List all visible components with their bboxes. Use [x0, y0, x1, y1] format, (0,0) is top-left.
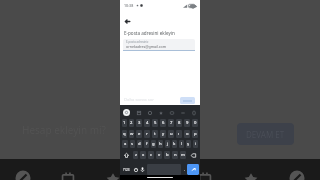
button[interactable]: Period: [182, 164, 187, 175]
staticText: a: [124, 141, 127, 147]
staticText: 0: [194, 120, 197, 126]
button[interactable]: s: [130, 140, 135, 148]
button[interactable]: Nav 4: [136, 168, 182, 180]
staticText: 8: [178, 120, 181, 126]
button[interactable]: Back: [122, 16, 133, 27]
button[interactable]: x: [140, 151, 146, 159]
button[interactable]: Keyboard tool 4: [168, 109, 175, 116]
button[interactable]: y: [160, 130, 166, 138]
staticText: y: [162, 131, 165, 137]
button[interactable]: 9: [184, 119, 190, 127]
staticText: .: [184, 167, 186, 173]
button[interactable]: Google: [123, 109, 130, 116]
staticText: m: [181, 152, 185, 158]
button[interactable]: z: [133, 151, 138, 159]
button[interactable]: b: [164, 151, 170, 159]
staticText: p: [194, 131, 197, 137]
staticText: i: [195, 141, 197, 147]
button[interactable]: Voice input: [139, 164, 146, 175]
button[interactable]: u: [168, 130, 174, 138]
staticText: x: [142, 152, 145, 158]
button[interactable]: E-posta adresiniz: [123, 39, 195, 51]
button[interactable]: 6: [160, 119, 166, 127]
staticText: 9: [186, 120, 189, 126]
button[interactable]: e: [136, 130, 142, 138]
button[interactable]: 2: [129, 119, 134, 127]
button[interactable]: Keyboard tool 2: [146, 109, 153, 116]
staticText: 4: [146, 120, 149, 126]
button[interactable]: o: [184, 130, 190, 138]
button[interactable]: 1: [122, 119, 127, 127]
staticText: ı: [178, 131, 180, 137]
button[interactable]: Keyboard tool 6: [190, 109, 197, 116]
button[interactable]: ş: [186, 140, 191, 148]
staticText: z: [135, 152, 137, 158]
button[interactable]: f: [144, 140, 149, 148]
button[interactable]: Shift: [122, 151, 131, 159]
button[interactable]: 7: [168, 119, 174, 127]
button[interactable]: ?123: [121, 164, 132, 175]
button[interactable]: [180, 97, 195, 104]
staticText: DEVAM ET: [246, 129, 285, 140]
button[interactable]: d: [137, 140, 142, 148]
button[interactable]: v: [156, 151, 162, 159]
button[interactable]: m: [180, 151, 186, 159]
staticText: t: [154, 131, 156, 137]
staticText: 5: [154, 120, 157, 126]
button[interactable]: p: [192, 130, 198, 138]
staticText: s: [131, 141, 134, 147]
button[interactable]: Nav 7: [274, 168, 320, 180]
button[interactable]: Nav 1: [0, 168, 45, 180]
staticText: v: [158, 152, 161, 158]
staticText: w: [130, 131, 134, 137]
button[interactable]: w: [129, 130, 134, 138]
button[interactable]: Nav 2: [45, 168, 90, 180]
staticText: 10:38: [124, 3, 134, 8]
staticText: 3: [138, 120, 141, 126]
button[interactable]: k: [172, 140, 177, 148]
staticText: 1: [123, 120, 126, 126]
button[interactable]: i: [193, 140, 198, 148]
button[interactable]: j: [165, 140, 170, 148]
button[interactable]: h: [158, 140, 163, 148]
staticText: 7: [170, 120, 173, 126]
staticText: d: [138, 141, 141, 147]
button[interactable]: c: [148, 151, 154, 159]
button[interactable]: Nav 3: [90, 168, 136, 180]
button[interactable]: Keyboard tool 3: [157, 109, 164, 116]
button[interactable]: r: [144, 130, 150, 138]
button[interactable]: 3: [136, 119, 142, 127]
button[interactable]: Emoji: [132, 164, 139, 175]
button[interactable]: Nav 5: [182, 168, 228, 180]
button[interactable]: n: [172, 151, 178, 159]
button[interactable]: 0: [192, 119, 198, 127]
button[interactable]: Keyboard tool 1: [135, 109, 142, 116]
staticText: f: [146, 141, 148, 147]
button[interactable]: Keyboard tool 5: [179, 109, 186, 116]
button[interactable]: 4: [144, 119, 150, 127]
staticText: E-posta adresiniz: [126, 40, 149, 44]
button[interactable]: ı: [176, 130, 182, 138]
button[interactable]: Nav 6: [228, 168, 274, 180]
staticText: h: [159, 141, 162, 147]
button[interactable]: t: [152, 130, 158, 138]
staticText: ornekadres@gmail.com: [126, 44, 167, 49]
staticText: 6: [162, 120, 165, 126]
button[interactable]: 5: [152, 119, 158, 127]
staticText: o: [186, 131, 189, 137]
button[interactable]: a: [122, 140, 128, 148]
staticText: k: [173, 141, 176, 147]
staticText: c: [150, 152, 153, 158]
button[interactable]: g: [151, 140, 156, 148]
button[interactable]: Daha sonra sor: [124, 97, 154, 103]
button[interactable]: Enter: [187, 164, 199, 175]
staticText: q: [123, 131, 126, 137]
button[interactable]: Backspace: [188, 151, 198, 159]
button[interactable]: 8: [176, 119, 182, 127]
staticText: n: [174, 152, 177, 158]
button[interactable]: l: [179, 140, 184, 148]
button[interactable]: q: [122, 130, 127, 138]
